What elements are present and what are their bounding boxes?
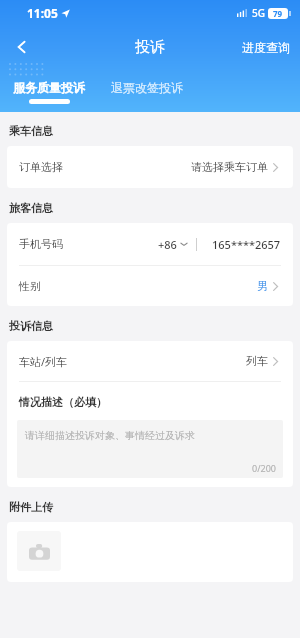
staticText: 旅客信息 [9,201,53,215]
staticText: 车站/列车 [19,354,68,369]
staticText: +86 [158,237,177,252]
button[interactable]: 订单选择 [7,146,293,188]
button[interactable]: 性别 [7,266,293,306]
button[interactable]: 服务质量投诉 [0,80,98,108]
staticText: 情况描述（必填） [19,395,107,409]
staticText: 附件上传 [9,500,53,514]
button[interactable]: 手机号码 [7,223,293,265]
staticText: 请详细描述投诉对象、事情经过及诉求 [25,429,195,442]
staticText: 165****2657 [212,237,281,252]
staticText: 0/200 [252,462,276,474]
staticText: 男 [257,279,268,293]
staticText: 订单选择 [19,160,63,174]
staticText: 进度查询 [242,40,290,55]
button[interactable]: 退票改签投诉 [98,80,196,108]
button[interactable]: 车站/列车 [7,341,293,381]
button[interactable]: 请详细描述投诉对象、事情经过及诉求 [17,420,283,478]
staticText: 手机号码 [19,237,63,251]
staticText: 服务质量投诉 [13,80,85,95]
staticText: 投诉信息 [9,319,53,333]
staticText: 79 [273,8,283,19]
button[interactable]: Back [5,30,39,64]
button[interactable]: 进度查询 [239,35,293,60]
staticText: 性别 [19,279,41,293]
staticText: 乘车信息 [9,124,53,138]
button[interactable]: Upload photo [17,531,61,571]
staticText: 列车 [246,354,268,368]
staticText: 请选择乘车订单 [191,160,268,174]
staticText: 5G [252,6,265,20]
staticText: 11:05 [27,5,58,21]
staticText: 投诉 [135,38,165,57]
staticText: 退票改签投诉 [111,80,183,95]
